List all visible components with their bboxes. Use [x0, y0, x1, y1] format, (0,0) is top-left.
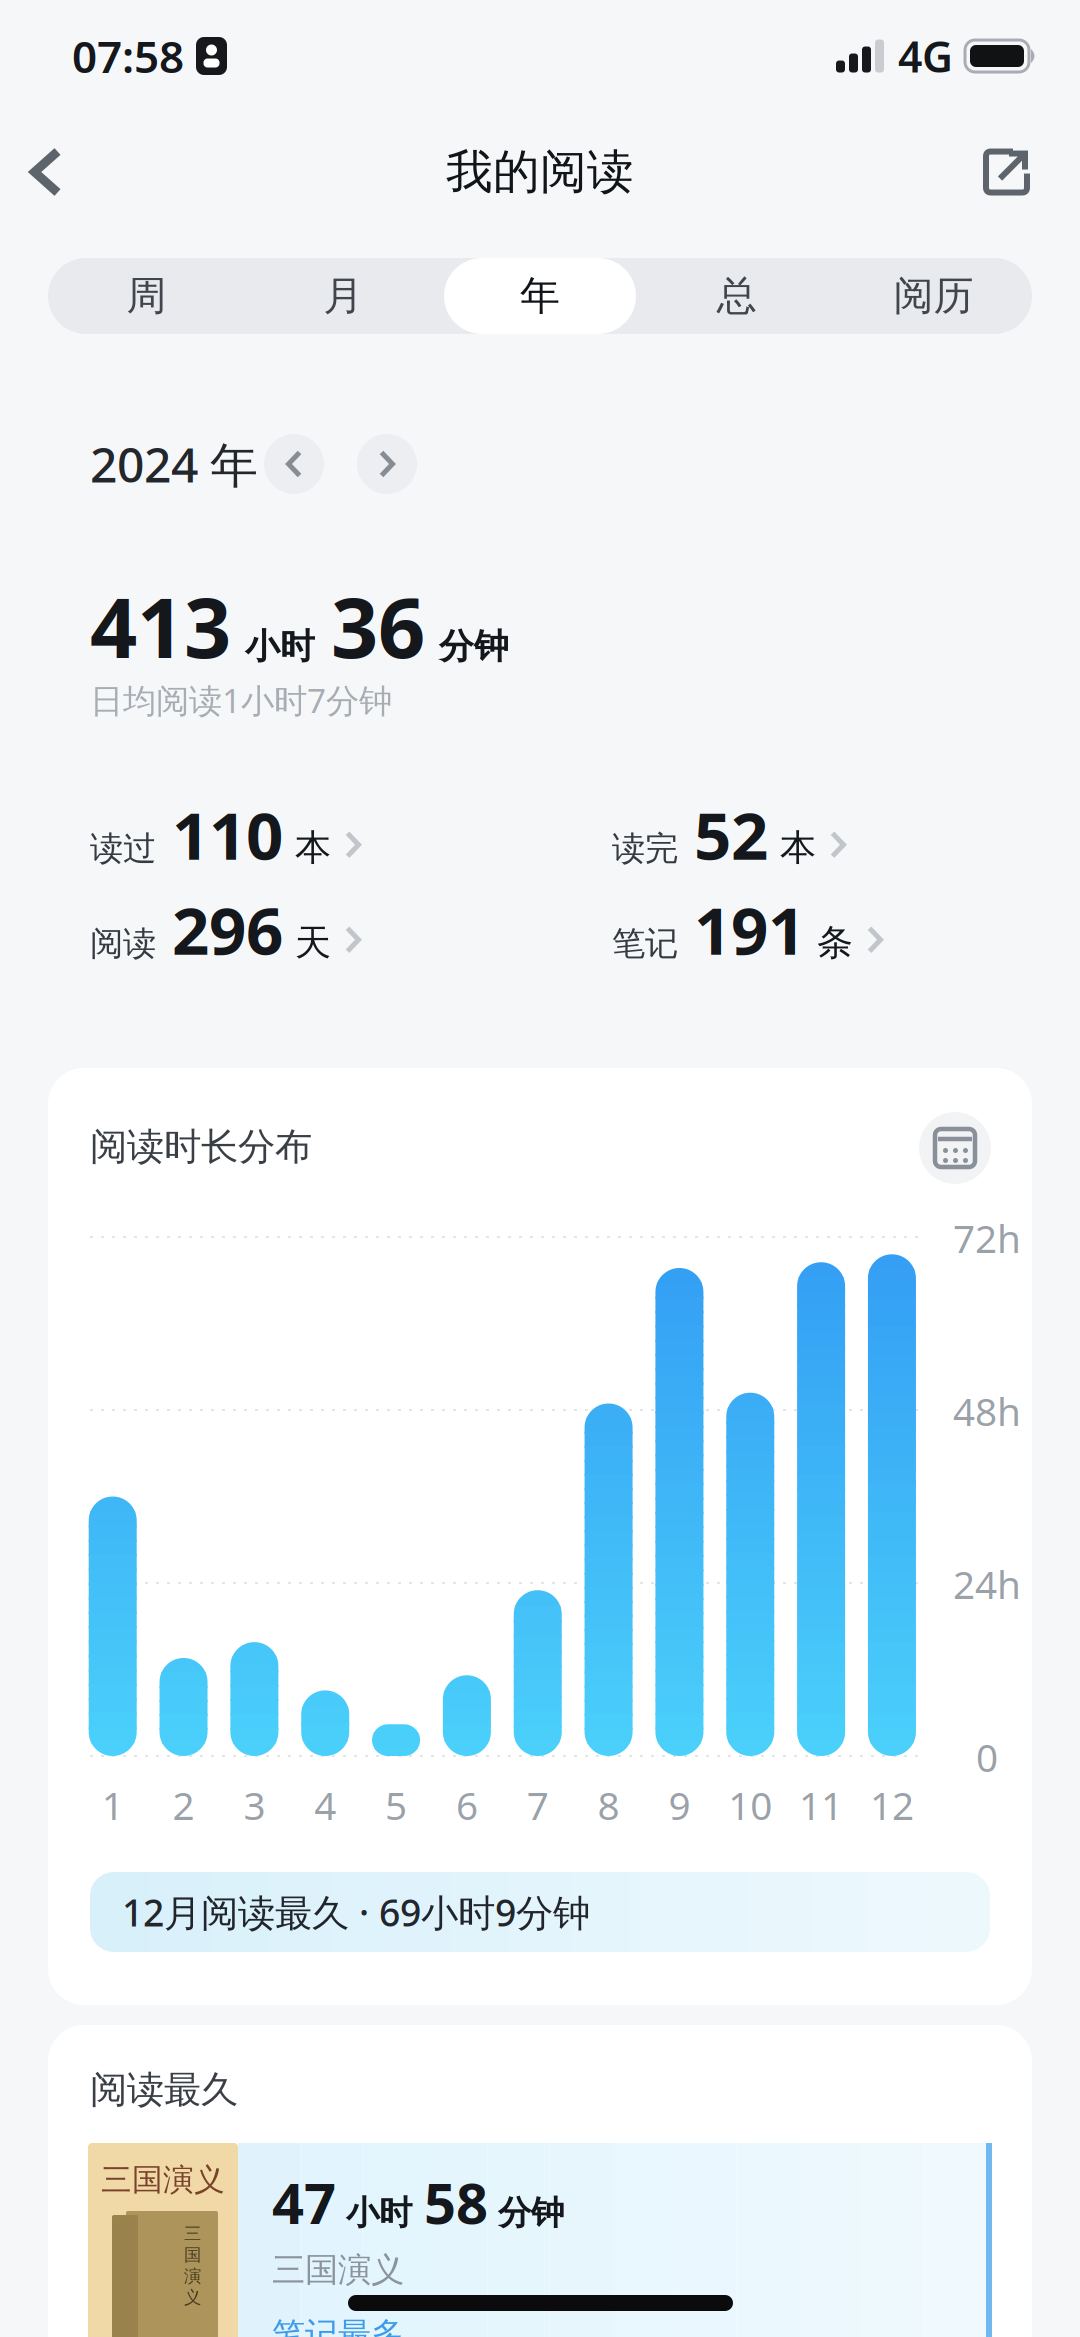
- button[interactable]: 读过: [90, 791, 361, 878]
- staticText: 52: [694, 791, 768, 878]
- staticText: 笔记最多: [272, 2314, 404, 2337]
- button[interactable]: Share: [983, 148, 1080, 195]
- staticText: 天: [295, 921, 331, 965]
- button[interactable]: 阅读: [90, 886, 361, 973]
- staticText: 72h: [953, 1212, 1021, 1264]
- staticText: 58: [424, 2165, 488, 2239]
- staticText: 4G: [898, 28, 953, 84]
- button[interactable]: 阅历: [835, 258, 1032, 334]
- staticText: 总: [717, 271, 757, 320]
- staticText: 分钟: [439, 625, 509, 668]
- staticText: 本: [780, 826, 816, 870]
- button[interactable]: 月: [245, 258, 442, 334]
- staticText: 阅历: [894, 271, 974, 320]
- staticText: 5: [385, 1779, 407, 1831]
- staticText: 笔记: [612, 923, 678, 964]
- button[interactable]: Previous year: [264, 434, 324, 494]
- button[interactable]: Back: [0, 147, 82, 197]
- staticText: 47: [272, 2165, 336, 2239]
- button[interactable]: Next year: [357, 434, 417, 494]
- staticText: 48h: [953, 1385, 1021, 1437]
- staticText: 10: [728, 1779, 772, 1831]
- staticText: 6: [456, 1779, 478, 1831]
- button[interactable]: 三国演义: [88, 2143, 992, 2337]
- staticText: 12: [870, 1779, 914, 1831]
- staticText: 三国演义: [272, 2249, 404, 2290]
- staticText: 2: [172, 1779, 194, 1831]
- button[interactable]: 读完: [612, 791, 846, 878]
- staticText: 191: [694, 886, 805, 973]
- staticText: 7: [527, 1779, 549, 1831]
- button[interactable]: 年: [442, 258, 638, 334]
- staticText: 0: [976, 1731, 998, 1783]
- staticText: 1: [102, 1779, 124, 1831]
- button[interactable]: 周: [48, 258, 245, 334]
- staticText: 3: [243, 1779, 265, 1831]
- staticText: 日均阅读1小时7分钟: [90, 678, 392, 722]
- staticText: 11: [799, 1779, 843, 1831]
- staticText: 条: [817, 921, 853, 965]
- staticText: 阅读时长分布: [90, 1124, 312, 1170]
- staticText: 2024 年: [90, 432, 258, 496]
- staticText: 我的阅读: [446, 143, 634, 201]
- staticText: 24h: [953, 1558, 1021, 1610]
- staticText: 读完: [612, 828, 678, 869]
- button[interactable]: Calendar view: [919, 1112, 991, 1184]
- staticText: 周: [126, 271, 166, 320]
- staticText: 小时: [245, 625, 315, 668]
- button[interactable]: 总: [638, 258, 835, 334]
- staticText: 分钟: [498, 2192, 564, 2233]
- staticText: 读过: [90, 828, 156, 869]
- staticText: 413: [90, 571, 231, 681]
- staticText: 月: [323, 271, 363, 320]
- staticText: 110: [172, 791, 283, 878]
- staticText: 年: [520, 271, 560, 320]
- staticText: 阅读: [90, 923, 156, 964]
- staticText: 296: [172, 886, 283, 973]
- staticText: 36: [331, 571, 425, 681]
- staticText: 4: [314, 1779, 336, 1831]
- staticText: 小时: [346, 2192, 412, 2233]
- staticText: 12月阅读最久 · 69小时9分钟: [122, 1887, 590, 1937]
- button[interactable]: 笔记: [612, 886, 883, 973]
- staticText: 9: [668, 1779, 690, 1831]
- staticText: 本: [295, 826, 331, 870]
- staticText: 三 国 演 义: [184, 2223, 201, 2308]
- staticText: 阅读最久: [90, 2067, 238, 2113]
- staticText: 三国演义: [101, 2161, 225, 2199]
- staticText: 07:58: [72, 27, 184, 85]
- staticText: 8: [598, 1779, 620, 1831]
